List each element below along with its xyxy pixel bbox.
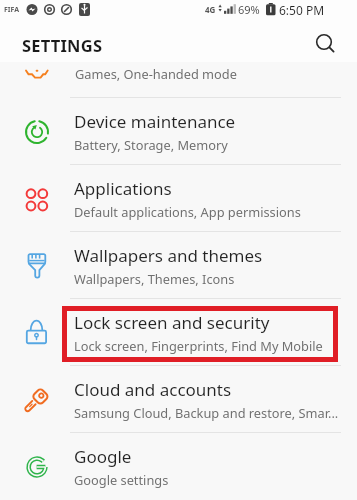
staticText: Wallpapers, Themes, Icons [74, 270, 235, 287]
staticText: SETTINGS [22, 34, 103, 56]
button[interactable]: Applications [0, 165, 357, 231]
staticText: Default applications, App permissions [74, 203, 301, 220]
button[interactable] [309, 26, 337, 54]
button[interactable]: Cloud and accounts [0, 366, 357, 432]
staticText: Games, One-handed mode [75, 65, 237, 82]
staticText: Applications [74, 177, 172, 200]
staticText: Device maintenance [74, 110, 236, 133]
staticText: FIFA [4, 5, 20, 15]
button[interactable]: Device maintenance [0, 98, 357, 164]
staticText: Lock screen, Fingerprints, Find My Mobil… [74, 337, 323, 354]
staticText: Battery, Storage, Memory [74, 136, 228, 153]
staticText: 6:50 PM [279, 2, 325, 18]
button[interactable]: Lock screen and security [0, 299, 357, 365]
button[interactable]: Wallpapers and themes [0, 232, 357, 298]
staticText: Lock screen and security [74, 311, 270, 334]
staticText: Google settings [74, 471, 169, 488]
button[interactable]: Google [0, 433, 357, 499]
staticText: Wallpapers and themes [74, 244, 263, 267]
staticText: Cloud and accounts [74, 378, 232, 401]
staticText: Samsung Cloud, Backup and restore, Smar.… [74, 404, 339, 421]
staticText: 69% [238, 2, 260, 17]
staticText: 4G [205, 4, 216, 15]
staticText: Google [74, 445, 132, 468]
